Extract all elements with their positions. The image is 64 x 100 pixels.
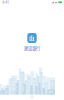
staticText: 9:41 <box>2 0 8 4</box>
staticText: 建设银行 <box>24 45 40 51</box>
